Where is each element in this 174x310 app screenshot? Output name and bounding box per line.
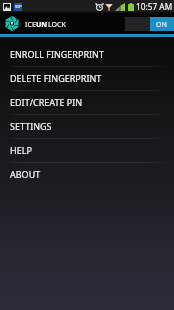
staticText: UN [36, 19, 48, 29]
button[interactable]: EDIT/CREATE PIN [0, 91, 174, 114]
button[interactable]: DELETE FINGERPRINT [0, 67, 174, 90]
staticText: LOCK [48, 19, 66, 29]
button[interactable]: Toggle IceUnlock on or off [125, 17, 174, 31]
staticText: ICE [25, 19, 36, 29]
staticText: 10:57 AM [136, 1, 173, 12]
button[interactable]: HELP [0, 139, 174, 162]
staticText: ON [156, 20, 168, 29]
staticText: DELETE FINGERPRINT [10, 72, 102, 84]
staticText: SETTINGS [10, 120, 52, 132]
staticText: ENROLL FINGERPRINT [10, 48, 104, 60]
staticText: HELP [10, 144, 32, 156]
button[interactable]: ABOUT [0, 163, 174, 186]
staticText: ABOUT [10, 168, 41, 180]
staticText: EDIT/CREATE PIN [10, 96, 83, 108]
staticText: SIP [15, 4, 22, 10]
button[interactable]: SETTINGS [0, 115, 174, 138]
button[interactable]: ENROLL FINGERPRINT [0, 43, 174, 66]
